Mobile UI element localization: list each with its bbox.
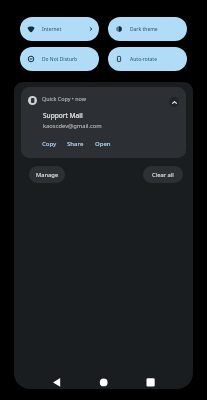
button[interactable]: Share <box>67 140 84 148</box>
staticText: kaoscdev@gmail.com <box>43 122 102 130</box>
staticText: Dark theme <box>130 26 158 33</box>
staticText: Internet <box>42 26 62 33</box>
button[interactable]: Internet <box>20 17 99 41</box>
staticText: Quick Copy • now <box>42 95 86 102</box>
staticText: Copy <box>42 140 57 148</box>
button[interactable]: Copy <box>42 140 57 148</box>
button[interactable]: Manage <box>29 166 65 183</box>
staticText: Do Not Disturb <box>42 56 78 63</box>
staticText: Support Mail <box>43 111 83 120</box>
button[interactable]: Open <box>95 140 111 148</box>
button[interactable]: Auto-rotate <box>108 47 187 71</box>
button[interactable]: Dark theme <box>108 17 187 41</box>
staticText: Auto-rotate <box>130 56 158 63</box>
staticText: Share <box>67 140 84 148</box>
button[interactable]: Quick Copy • now <box>21 87 186 158</box>
button[interactable]: Do Not Disturb <box>20 47 99 71</box>
button[interactable]: Clear all <box>143 166 183 183</box>
button[interactable]: Collapse notification <box>169 97 179 107</box>
other: Navigation bar <box>0 0 207 400</box>
staticText: Open <box>95 140 111 148</box>
staticText: Clear all <box>152 171 174 179</box>
staticText: Manage <box>36 171 59 179</box>
